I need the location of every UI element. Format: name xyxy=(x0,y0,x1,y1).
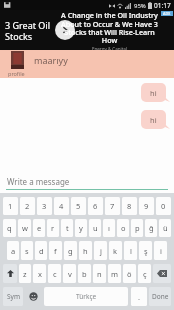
staticText: j xyxy=(100,246,102,256)
button[interactable]: Shift xyxy=(3,264,17,283)
staticText: 2 xyxy=(25,201,30,211)
button[interactable]: w xyxy=(18,219,31,237)
button[interactable]: o xyxy=(117,219,129,237)
staticText: Write a message xyxy=(7,176,70,187)
button[interactable]: hi xyxy=(141,110,170,129)
staticText: c xyxy=(53,269,57,279)
button[interactable]: Write a message xyxy=(0,168,174,193)
staticText: 3 Great Oil Stocks xyxy=(5,19,50,42)
staticText: 8 xyxy=(127,201,132,211)
button[interactable]: . xyxy=(131,287,147,306)
button[interactable]: ş xyxy=(139,241,152,260)
staticText: m xyxy=(111,269,119,279)
button[interactable]: ç xyxy=(138,264,151,283)
button[interactable]: hi xyxy=(141,83,170,102)
staticText: ğ xyxy=(149,223,154,233)
button[interactable]: x xyxy=(33,264,46,283)
staticText: e xyxy=(37,223,42,233)
staticText: o xyxy=(121,223,126,233)
staticText: hi xyxy=(150,88,157,98)
staticText: Sym xyxy=(7,292,20,301)
button[interactable]: a xyxy=(7,241,19,260)
button[interactable]: y xyxy=(75,219,87,237)
button[interactable]: Backspace xyxy=(153,264,171,283)
button[interactable]: 4 xyxy=(54,197,69,215)
staticText: u xyxy=(93,223,98,233)
button[interactable]: 5 xyxy=(71,197,86,215)
staticText: i xyxy=(160,246,162,256)
staticText: n xyxy=(97,269,102,279)
button[interactable]: ü xyxy=(159,219,171,237)
button[interactable]: p xyxy=(131,219,143,237)
staticText: 95% xyxy=(134,2,146,10)
staticText: ö xyxy=(127,269,132,279)
staticText: 01:17 xyxy=(154,1,171,10)
staticText: ü xyxy=(163,223,168,233)
button[interactable]: 6 xyxy=(88,197,103,215)
button[interactable]: f xyxy=(49,241,62,260)
staticText: 9 xyxy=(144,201,149,211)
button[interactable]: c xyxy=(48,264,61,283)
button[interactable]: 7 xyxy=(105,197,120,215)
staticText: w xyxy=(22,223,28,233)
button[interactable]: i xyxy=(154,241,167,260)
staticText: t xyxy=(66,223,69,233)
button[interactable]: Symbols xyxy=(3,287,23,306)
button[interactable]: r xyxy=(47,219,59,237)
button[interactable]: 3 Great Oil Stocks xyxy=(0,10,174,50)
button[interactable]: l xyxy=(124,241,137,260)
button[interactable]: h xyxy=(79,241,92,260)
staticText: 3 xyxy=(42,201,47,211)
staticText: l xyxy=(130,246,132,256)
button[interactable]: 9 xyxy=(139,197,154,215)
button[interactable]: n xyxy=(93,264,106,283)
button[interactable]: 1 xyxy=(3,197,18,215)
button[interactable]: 0 xyxy=(156,197,171,215)
button[interactable]: 3 xyxy=(37,197,52,215)
staticText: x xyxy=(38,269,42,279)
button[interactable]: Emoji xyxy=(25,287,41,306)
staticText: 5 xyxy=(76,201,81,211)
other: Ad choices xyxy=(161,11,173,16)
staticText: profile xyxy=(8,70,25,77)
staticText: Türkçe xyxy=(76,292,97,301)
staticText: v xyxy=(68,269,72,279)
staticText: 4 xyxy=(59,201,64,211)
staticText: 6 xyxy=(93,201,98,211)
staticText: p xyxy=(135,223,140,233)
button[interactable]: maarıyy xyxy=(0,50,174,78)
staticText: 7 xyxy=(110,201,115,211)
button[interactable]: k xyxy=(109,241,122,260)
button[interactable]: v xyxy=(63,264,76,283)
staticText: Energy & Capital xyxy=(92,46,127,50)
button[interactable]: d xyxy=(35,241,47,260)
staticText: . xyxy=(138,292,141,302)
button[interactable]: m xyxy=(108,264,121,283)
button[interactable]: t xyxy=(61,219,73,237)
button[interactable]: 2 xyxy=(20,197,35,215)
button[interactable]: ı xyxy=(103,219,115,237)
staticText: 0 xyxy=(161,201,166,211)
other: Open ad xyxy=(55,20,75,40)
button[interactable]: g xyxy=(64,241,77,260)
staticText: b xyxy=(82,269,87,279)
staticText: Done xyxy=(152,292,169,301)
button[interactable]: Done xyxy=(149,287,171,306)
button[interactable]: b xyxy=(78,264,91,283)
staticText: k xyxy=(113,246,118,256)
button[interactable]: Türkçe xyxy=(44,287,128,306)
button[interactable]: u xyxy=(89,219,101,237)
button[interactable]: q xyxy=(3,219,16,237)
button[interactable]: s xyxy=(21,241,33,260)
button[interactable]: j xyxy=(94,241,107,260)
button[interactable]: 8 xyxy=(122,197,137,215)
staticText: ADX xyxy=(163,11,171,16)
button[interactable]: ö xyxy=(123,264,136,283)
staticText: z xyxy=(23,269,27,279)
staticText: ı xyxy=(108,223,110,233)
button[interactable]: e xyxy=(33,219,45,237)
button[interactable]: ğ xyxy=(145,219,157,237)
staticText: ç xyxy=(143,269,147,279)
staticText: 1 xyxy=(8,201,13,211)
button[interactable]: z xyxy=(19,264,31,283)
